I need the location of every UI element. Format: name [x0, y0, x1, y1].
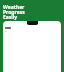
- other: Device notch: [27, 21, 38, 25]
- button[interactable]: Today: [5, 27, 11, 29]
- button[interactable]: Device notch: [3, 21, 61, 72]
- staticText: Weather Progress Easily: [3, 4, 25, 20]
